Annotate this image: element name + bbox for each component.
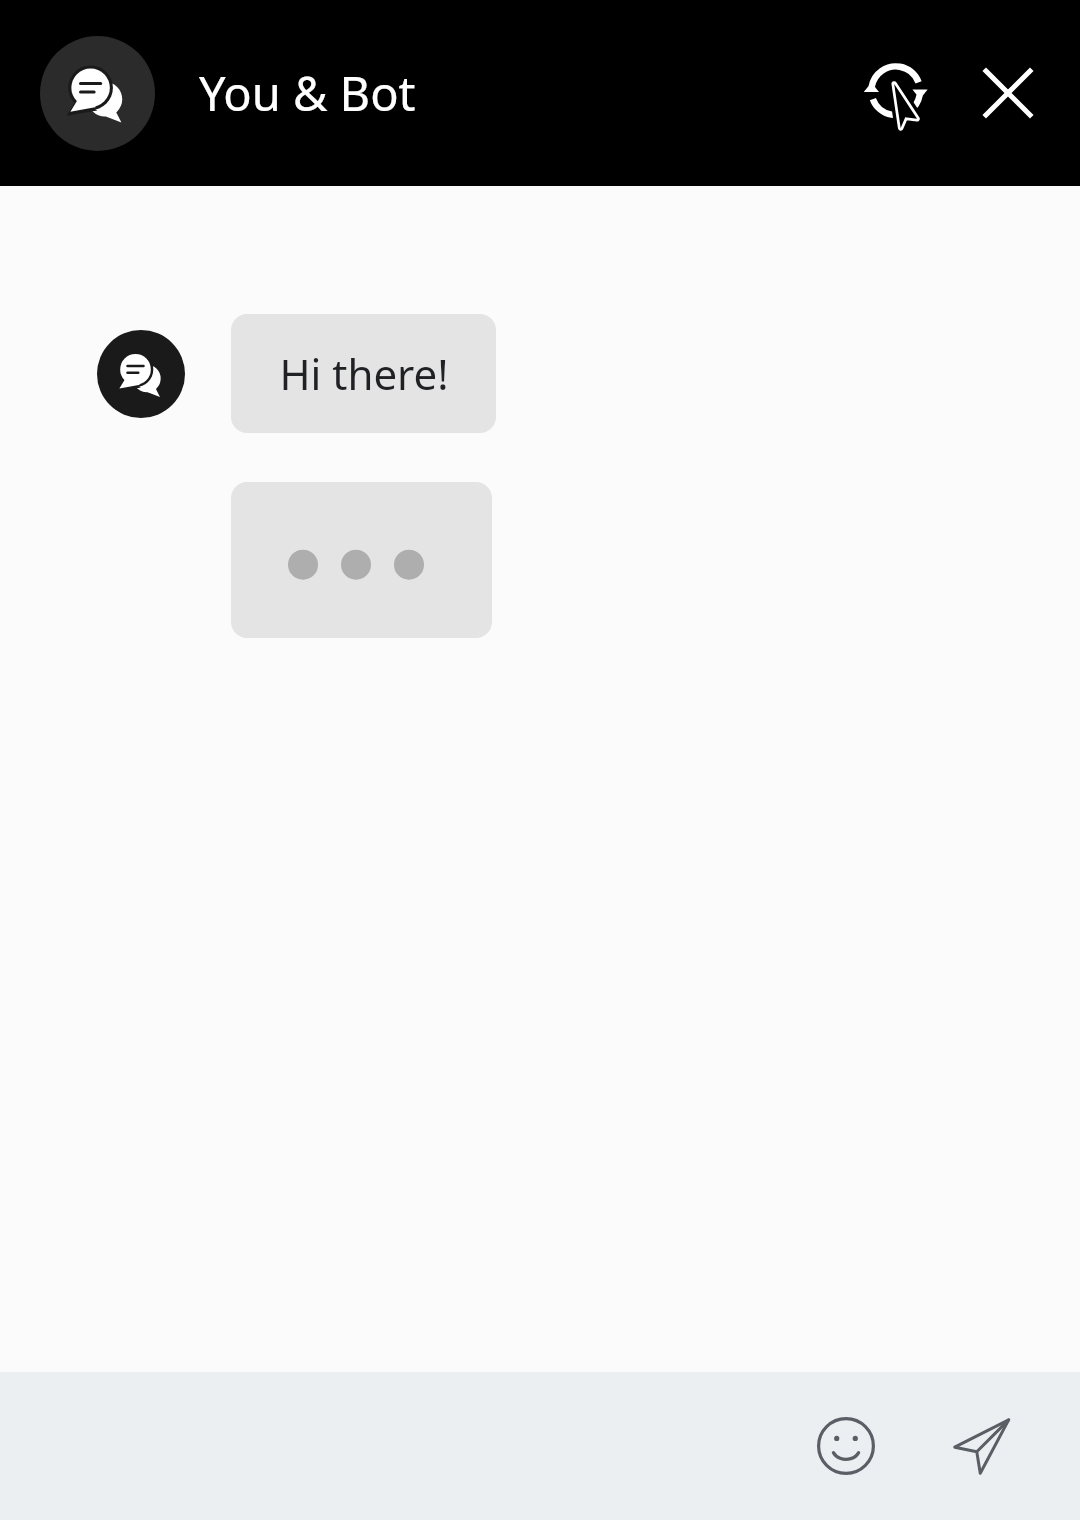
- button[interactable]: Insert emoji: [800, 1400, 892, 1492]
- button[interactable]: Hi there!: [231, 314, 496, 433]
- staticText: You & Bot: [199, 61, 416, 125]
- button[interactable]: Send: [936, 1400, 1028, 1492]
- button[interactable]: [231, 482, 492, 638]
- button[interactable]: Restart conversation: [850, 45, 946, 141]
- button[interactable]: Conversation avatar: [40, 36, 155, 151]
- staticText: Hi there!: [279, 345, 449, 402]
- button[interactable]: Close: [960, 45, 1056, 141]
